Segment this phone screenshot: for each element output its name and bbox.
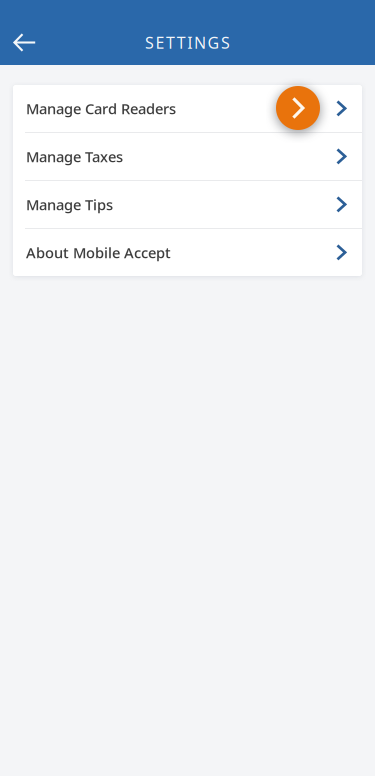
- button[interactable]: Manage Tips: [13, 181, 362, 228]
- staticText: About Mobile Accept: [26, 243, 171, 262]
- staticText: Manage Card Readers: [26, 99, 176, 118]
- button[interactable]: Manage Card Readers: [13, 85, 362, 132]
- button[interactable]: Back: [0, 20, 49, 65]
- staticText: SETTINGS: [145, 32, 230, 53]
- button[interactable]: About Mobile Accept: [13, 229, 362, 276]
- staticText: Manage Taxes: [26, 147, 123, 166]
- staticText: Manage Tips: [26, 195, 113, 214]
- button[interactable]: Manage Taxes: [13, 133, 362, 180]
